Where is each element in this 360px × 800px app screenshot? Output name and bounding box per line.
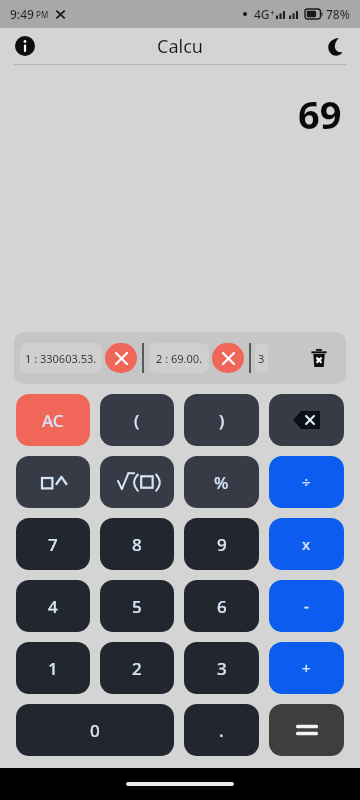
button[interactable]: Delete entry [212,343,244,373]
button[interactable]: Backspace [269,394,344,446]
button[interactable]: Equals [269,704,344,756]
button[interactable]: Delete entry [105,343,137,373]
button[interactable]: Power [16,456,90,508]
staticText: + [270,7,275,18]
staticText: % [214,471,229,494]
button[interactable]: . [184,704,259,756]
staticText: 9:49 [10,6,34,22]
staticText: 5 [132,595,142,618]
button[interactable]: Square root [100,456,174,508]
staticText: 0 [90,719,100,742]
staticText: 2 [132,657,142,680]
staticText: 1 [48,657,58,680]
button[interactable]: 2 [100,642,174,694]
button[interactable]: 3 [255,343,268,373]
staticText: x [302,534,311,554]
staticText: ( [134,409,140,432]
button[interactable]: 4 [16,580,90,632]
button[interactable]: 6 [184,580,259,632]
button[interactable]: 8 [100,518,174,570]
button[interactable]: + [269,642,344,694]
button[interactable]: 7 [16,518,90,570]
staticText: - [304,596,309,616]
staticText: Calcu [157,34,203,59]
button[interactable]: 3 [184,642,259,694]
staticText: 69 [298,88,342,140]
button[interactable]: ÷ [269,456,344,508]
staticText: 7 [48,533,58,556]
staticText: 1 : 330603.53. [25,351,97,366]
staticText: ÷ [302,472,311,492]
staticText: 9 [217,533,227,556]
staticText: 3 [258,351,265,366]
button[interactable]: AC [16,394,90,446]
button[interactable]: 1 [16,642,90,694]
button[interactable]: 0 [16,704,174,756]
button[interactable]: ( [100,394,174,446]
button[interactable]: 5 [100,580,174,632]
staticText: 4 [48,595,58,618]
staticText: PM [36,9,49,20]
button[interactable]: Info [10,31,40,61]
staticText: 4G [254,6,270,22]
button[interactable]: - [269,580,344,632]
staticText: 78% [326,6,350,22]
button[interactable]: 2 : 69.00. [149,343,209,373]
staticText: 2 : 69.00. [156,351,203,366]
button[interactable]: x [269,518,344,570]
staticText: + [302,658,311,678]
button[interactable]: Clear history [302,341,336,375]
staticText: ) [219,409,225,432]
staticText: 6 [217,595,227,618]
button[interactable]: 9 [184,518,259,570]
staticText: AC [42,409,64,432]
button[interactable]: Toggle dark mode [318,31,348,61]
staticText: 8 [132,533,142,556]
button[interactable]: % [184,456,259,508]
button[interactable]: 1 : 330603.53. [20,343,102,373]
button[interactable]: ) [184,394,259,446]
staticText: . [219,719,224,742]
staticText: 3 [217,657,227,680]
